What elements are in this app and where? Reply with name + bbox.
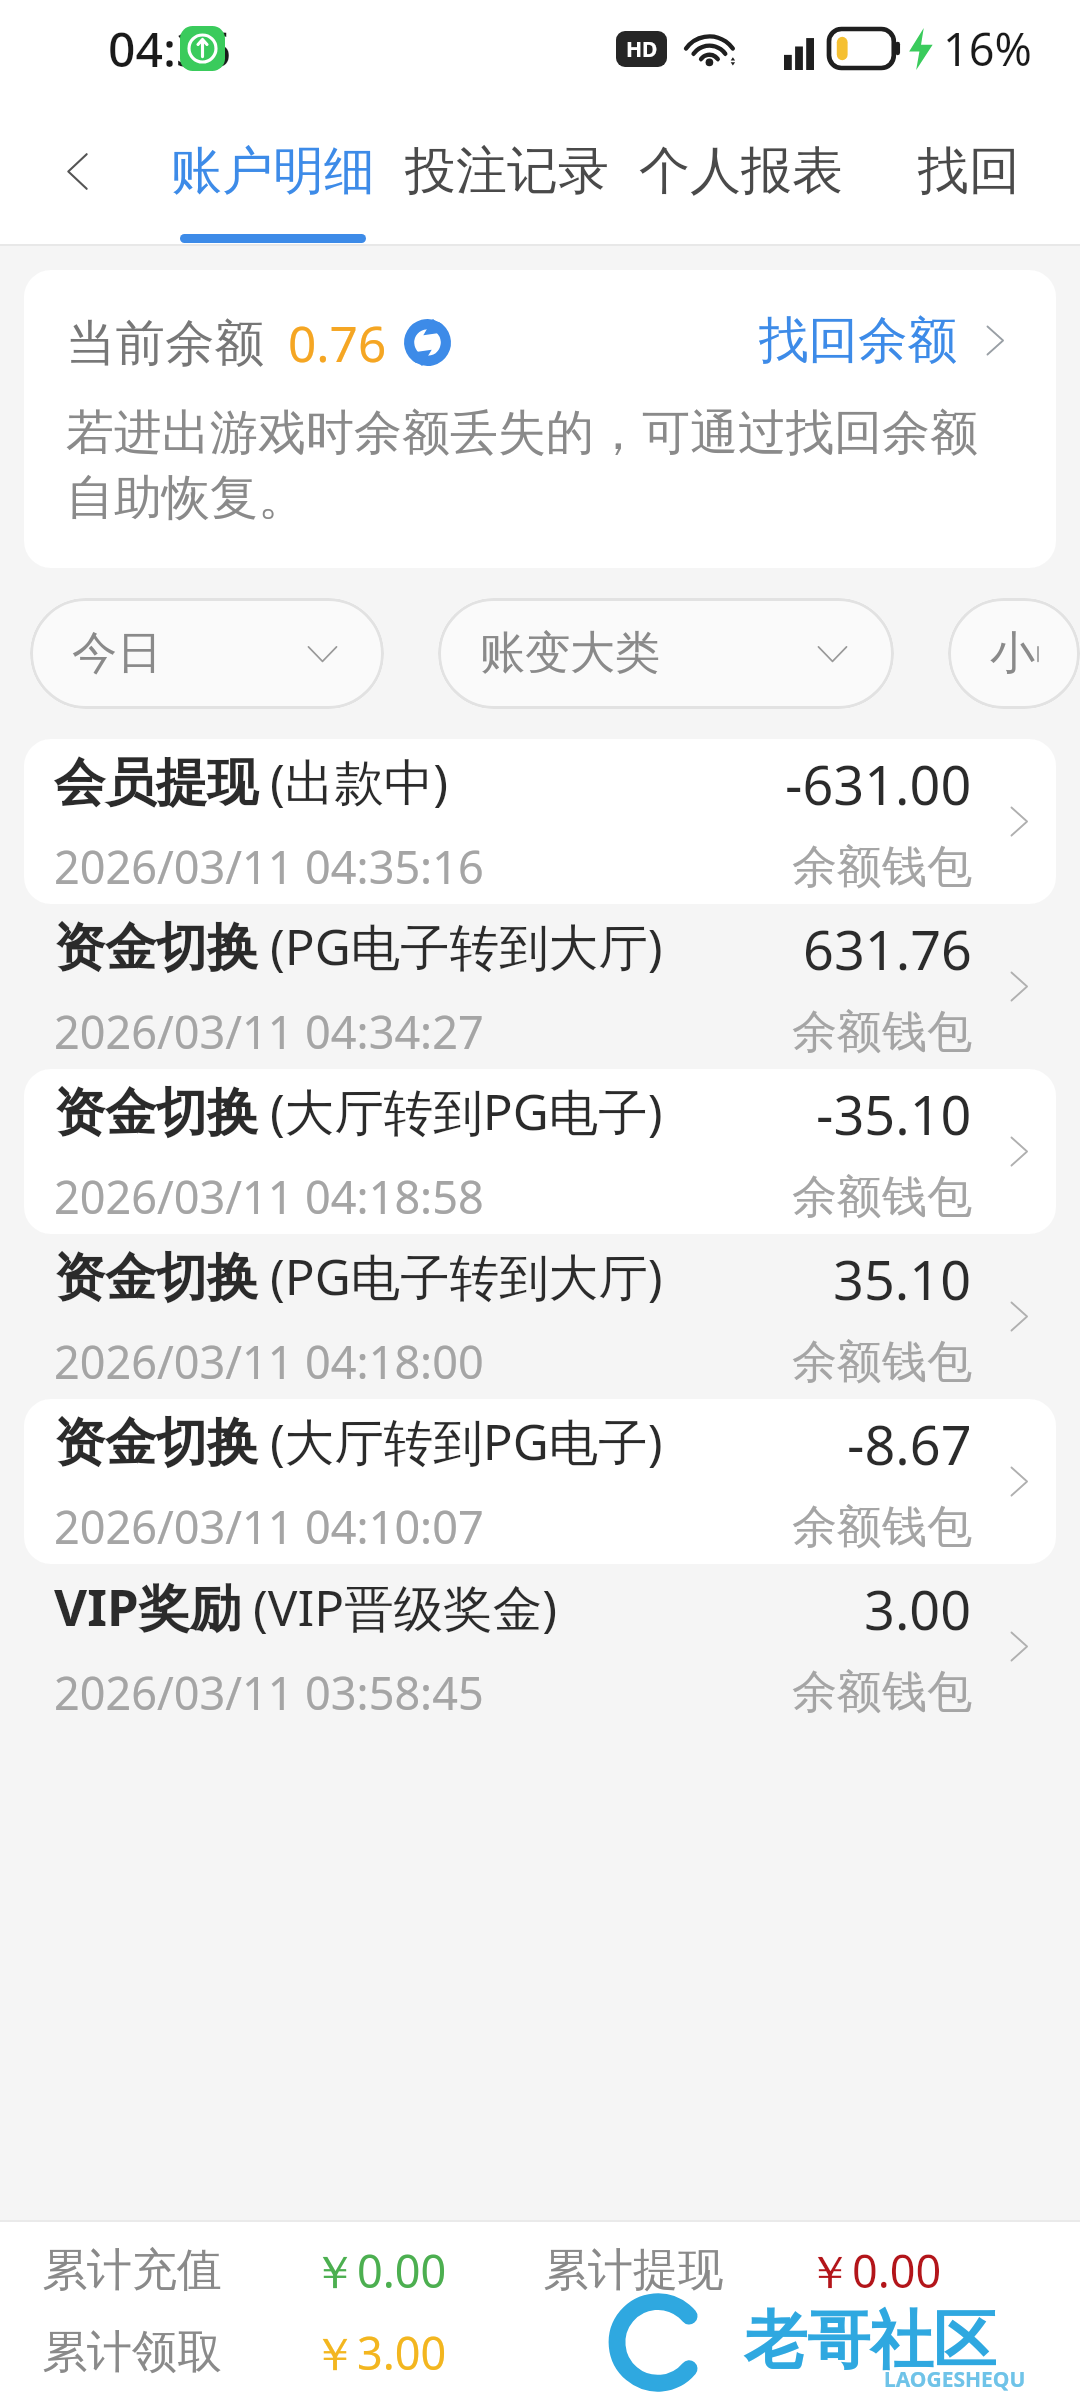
staticText: (出款中) <box>270 747 449 815</box>
staticText: 16% <box>943 18 1032 79</box>
staticText: 会员提现 <box>54 751 258 815</box>
staticText: (VIP晋级奖金) <box>253 1573 558 1641</box>
staticText: -35.10 <box>816 1077 972 1151</box>
button[interactable]: 资金切换 <box>24 1234 1056 1399</box>
staticText: 2026/03/11 04:18:00 <box>54 1331 484 1392</box>
staticText: 今日 <box>72 625 162 682</box>
staticText: 当前余额 <box>66 312 264 374</box>
staticText: -8.67 <box>847 1407 972 1481</box>
staticText: 2026/03/11 04:10:07 <box>54 1496 484 1557</box>
button[interactable]: Refresh balance <box>402 317 453 368</box>
staticText: HD <box>626 35 658 64</box>
button[interactable]: 投注记录 <box>390 96 624 246</box>
staticText: VIP奖励 <box>54 1571 241 1641</box>
button[interactable]: 当前余额 <box>24 270 1056 568</box>
staticText: 账变大类 <box>480 625 660 682</box>
staticText: (PG电子转到大厅) <box>270 912 663 980</box>
button[interactable]: 找回 <box>858 96 1080 246</box>
staticText: 累计领取 <box>42 2324 222 2381</box>
staticText: 老哥社区 <box>744 2301 996 2380</box>
staticText: ￥0.00 <box>807 2240 942 2301</box>
staticText: 投注记录 <box>405 139 609 203</box>
staticText: 余额钱包 <box>792 1004 972 1061</box>
staticText: -631.00 <box>785 747 972 821</box>
staticText: 04:36 <box>108 16 231 81</box>
staticText: 找回 <box>918 139 1020 203</box>
staticText: 余额钱包 <box>792 1664 972 1721</box>
staticText: 账户明细 <box>171 139 375 203</box>
staticText: ￥0.00 <box>312 2240 447 2301</box>
button[interactable]: 账变大类 <box>438 598 894 709</box>
staticText: (大厅转到PG电子) <box>270 1407 663 1475</box>
staticText: 小类明细 <box>990 625 1038 682</box>
button[interactable]: 今日 <box>30 598 384 709</box>
staticText: 631.76 <box>803 912 972 986</box>
staticText: 余额钱包 <box>792 1169 972 1226</box>
button[interactable]: 找回余额 <box>759 309 1014 371</box>
staticText: 2026/03/11 04:34:27 <box>54 1001 484 1062</box>
staticText: 个人报表 <box>639 139 843 203</box>
button[interactable]: 资金切换 <box>24 1399 1056 1564</box>
staticText: (PG电子转到大厅) <box>270 1242 663 1310</box>
staticText: 0.76 <box>288 309 387 376</box>
staticText: 找回余额 <box>759 309 957 371</box>
staticText: 余额钱包 <box>792 1334 972 1391</box>
staticText: 3.00 <box>864 1572 972 1646</box>
button[interactable]: 资金切换 <box>24 1069 1056 1234</box>
staticText: 35.10 <box>833 1242 972 1316</box>
staticText: 资金切换 <box>54 1081 258 1145</box>
staticText: 资金切换 <box>54 1411 258 1475</box>
staticText: 资金切换 <box>54 916 258 980</box>
staticText: 2026/03/11 04:18:58 <box>54 1166 484 1227</box>
button[interactable]: Back <box>18 111 138 231</box>
staticText: 2026/03/11 04:35:16 <box>54 836 484 897</box>
button[interactable]: 个人报表 <box>624 96 858 246</box>
staticText: 累计充值 <box>42 2242 222 2299</box>
staticText: 2026/03/11 03:58:45 <box>54 1662 484 1723</box>
button[interactable]: 会员提现 <box>24 739 1056 904</box>
staticText: LAOGESHEQU <box>884 2365 1026 2394</box>
staticText: 余额钱包 <box>792 839 972 896</box>
button[interactable]: 账户明细 <box>156 96 390 246</box>
button[interactable]: VIP奖励 <box>24 1564 1056 1729</box>
button[interactable]: 资金切换 <box>24 904 1056 1069</box>
staticText: ￥3.00 <box>312 2322 447 2383</box>
button[interactable]: 小类明细 <box>948 598 1080 709</box>
staticText: 若进出游戏时余额丢失的，可通过找回余额自助恢复。 <box>66 403 1014 529</box>
staticText: 资金切换 <box>54 1246 258 1310</box>
staticText: 余额钱包 <box>792 1499 972 1556</box>
staticText: 累计提现 <box>543 2242 723 2299</box>
staticText: (大厅转到PG电子) <box>270 1077 663 1145</box>
